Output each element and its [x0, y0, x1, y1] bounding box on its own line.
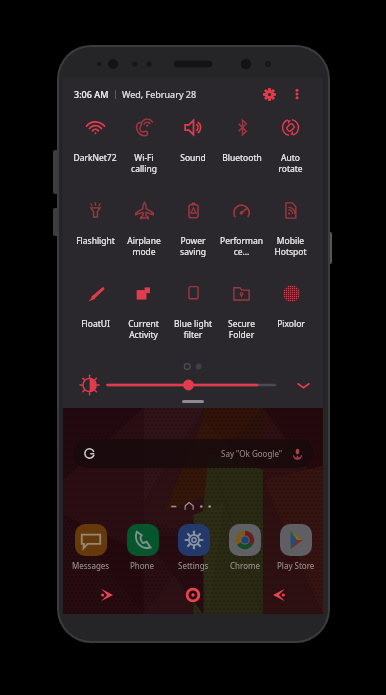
button[interactable]: Sound: [168, 112, 217, 195]
staticText: Settings: [178, 560, 209, 571]
staticText: Pixolor: [277, 318, 305, 330]
button[interactable]: Bluetooth: [217, 112, 266, 195]
button[interactable]: Chrome: [219, 524, 270, 571]
staticText: Blue light filter: [174, 318, 212, 340]
button[interactable]: Expand: [293, 375, 313, 395]
button[interactable]: Secure Folder: [217, 278, 266, 361]
button[interactable]: Blue light filter: [168, 278, 217, 361]
button[interactable]: Power saving: [168, 195, 217, 278]
button[interactable]: Say "Ok Google": [73, 439, 313, 468]
button[interactable]: Play Store: [270, 524, 321, 571]
staticText: DarkNet72: [73, 152, 117, 164]
staticText: Wi-Fi calling: [131, 152, 157, 174]
staticText: Mobile Hotspot: [274, 235, 307, 257]
staticText: FloatUI: [81, 318, 110, 330]
button[interactable]: Settings: [168, 524, 219, 571]
button[interactable]: Phone: [117, 524, 168, 571]
staticText: Current Activity: [128, 318, 159, 340]
staticText: Auto rotate: [278, 152, 303, 174]
staticText: Play Store: [277, 560, 315, 571]
button[interactable]: Airplane mode: [119, 195, 168, 278]
button[interactable]: Flashlight: [71, 195, 119, 278]
staticText: Messages: [72, 560, 110, 571]
staticText: Performan ce…: [220, 235, 263, 257]
button[interactable]: DarkNet72: [71, 112, 119, 195]
button[interactable]: Mobile Hotspot: [266, 195, 315, 278]
staticText: Secure Folder: [228, 318, 255, 340]
staticText: Airplane mode: [127, 235, 161, 257]
staticText: Flashlight: [76, 235, 115, 247]
staticText: Bluetooth: [222, 152, 262, 164]
button[interactable]: Auto rotate: [266, 112, 315, 195]
button[interactable]: Home: [149, 582, 236, 608]
staticText: Wed, February 28: [122, 88, 197, 100]
button[interactable]: Performan ce…: [217, 195, 266, 278]
staticText: 3:06 AM: [74, 88, 109, 100]
staticText: Power saving: [180, 235, 206, 257]
button[interactable]: Pixolor: [266, 278, 315, 361]
staticText: Sound: [180, 152, 206, 164]
button[interactable]: More options: [287, 84, 307, 104]
button[interactable]: FloatUI: [71, 278, 119, 361]
button[interactable]: Current Activity: [119, 278, 168, 361]
button[interactable]: Recents: [63, 582, 149, 608]
staticText: Chrome: [230, 560, 260, 571]
button[interactable]: Messages: [65, 524, 117, 571]
button[interactable]: Wi-Fi calling: [119, 112, 168, 195]
staticText: Phone: [130, 560, 155, 571]
button[interactable]: Settings: [259, 84, 279, 104]
staticText: Say "Ok Google": [221, 448, 283, 459]
button[interactable]: Back: [236, 582, 323, 608]
